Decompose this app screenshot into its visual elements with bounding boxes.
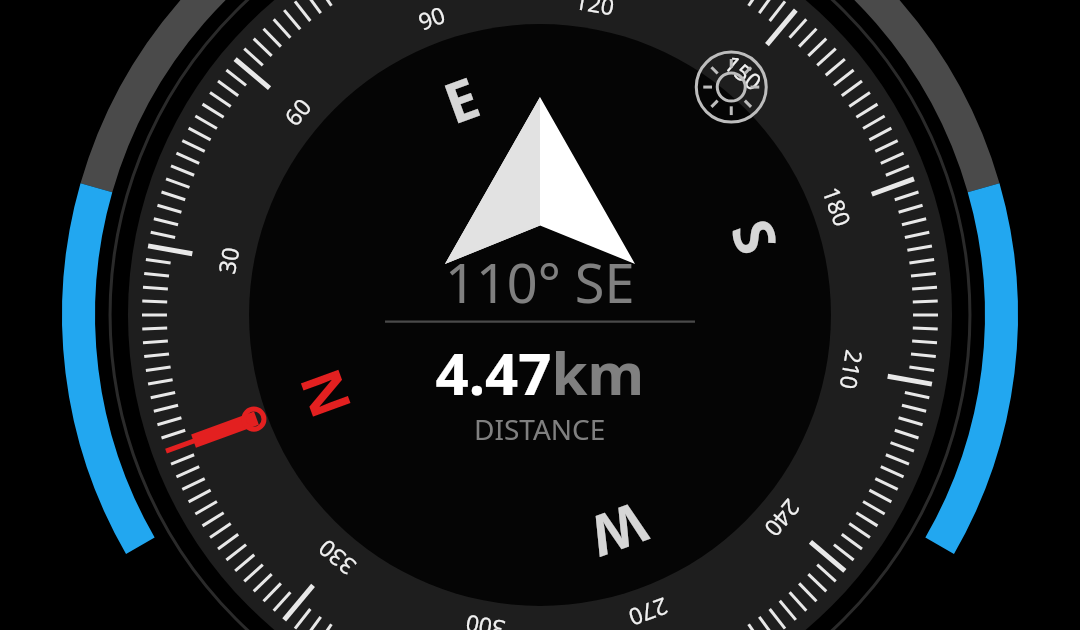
button[interactable]: Altitude 16m — [0, 0, 140, 80]
button[interactable]: Magnetic field 37 microtesla — [940, 0, 1080, 80]
button[interactable]: Compass dial — [0, 0, 1080, 630]
